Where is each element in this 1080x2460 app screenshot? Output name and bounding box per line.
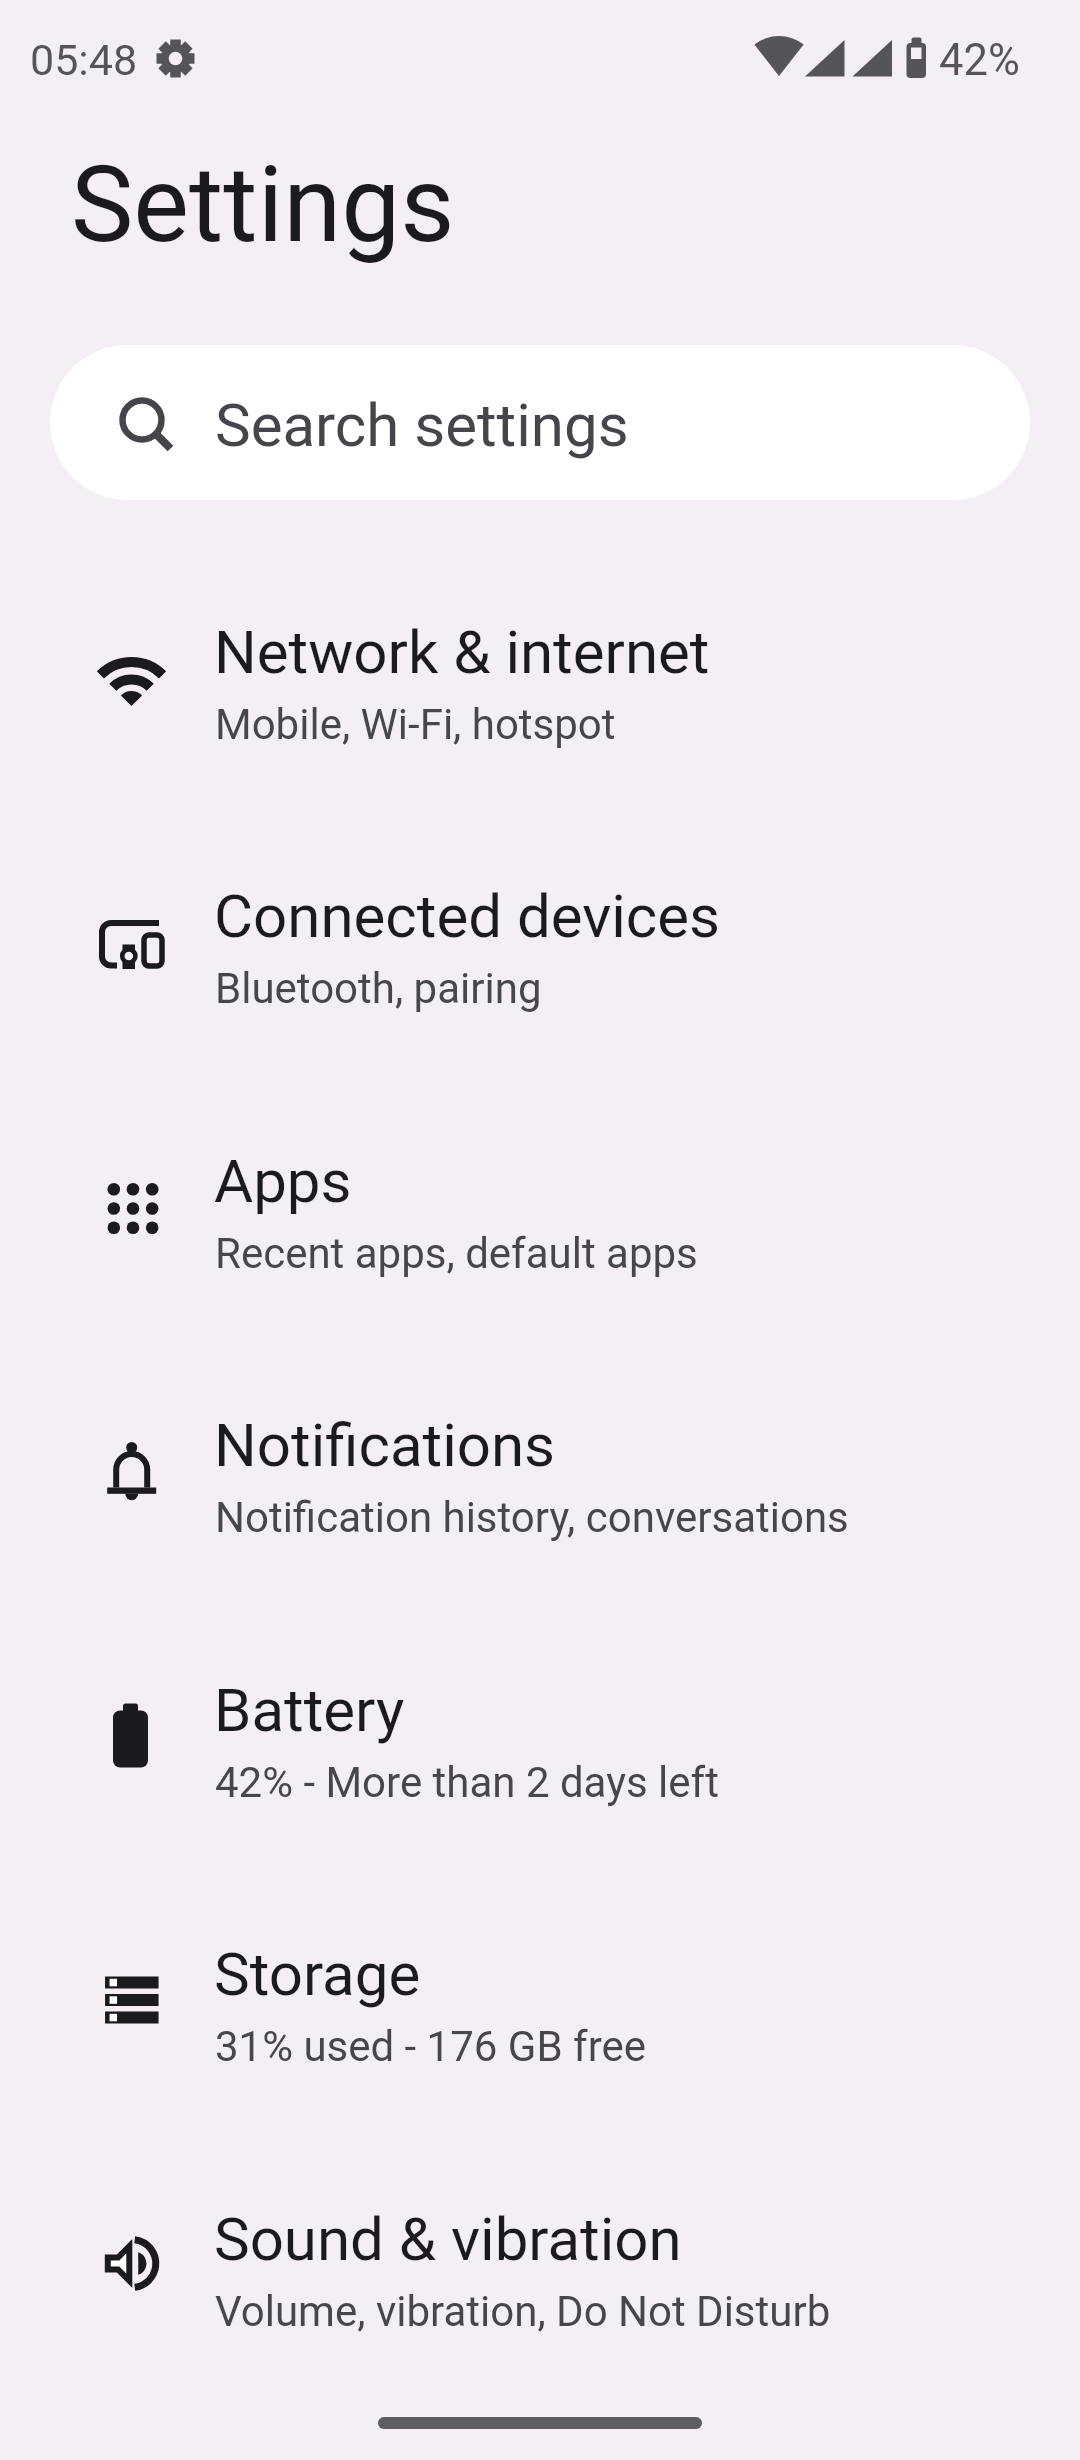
button[interactable]: Search settings (50, 345, 1030, 500)
staticText: Connected devices (214, 881, 721, 951)
staticText: Search settings (215, 390, 629, 460)
staticText: Mobile, Wi-Fi, hotspot (215, 700, 616, 749)
staticText: Volume, vibration, Do Not Disturb (215, 2287, 831, 2336)
button[interactable]: Notifications (0, 1353, 1080, 1617)
button[interactable]: Battery (0, 1618, 1080, 1882)
button[interactable]: Apps (0, 1089, 1080, 1353)
button[interactable]: Connected devices (0, 824, 1080, 1088)
staticText: Battery (214, 1675, 405, 1745)
staticText: Bluetooth, pairing (215, 964, 542, 1013)
staticText: Storage (214, 1939, 421, 2009)
staticText: Network & internet (214, 617, 710, 687)
button[interactable]: Storage (0, 1882, 1080, 2146)
staticText: 31% used - 176 GB free (215, 2022, 647, 2071)
staticText: Settings (71, 144, 455, 267)
staticText: 42% - More than 2 days left (215, 1758, 719, 1807)
staticText: 05:48 (30, 35, 138, 85)
button[interactable]: Network & internet (0, 560, 1080, 824)
staticText: Recent apps, default apps (215, 1229, 698, 1278)
staticText: Sound & vibration (214, 2204, 682, 2274)
staticText: Notification history, conversations (215, 1493, 849, 1542)
button[interactable]: Sound & vibration (0, 2147, 1080, 2411)
staticText: Apps (214, 1146, 352, 1216)
staticText: Notifications (214, 1410, 556, 1480)
staticText: 42% (939, 35, 1020, 86)
